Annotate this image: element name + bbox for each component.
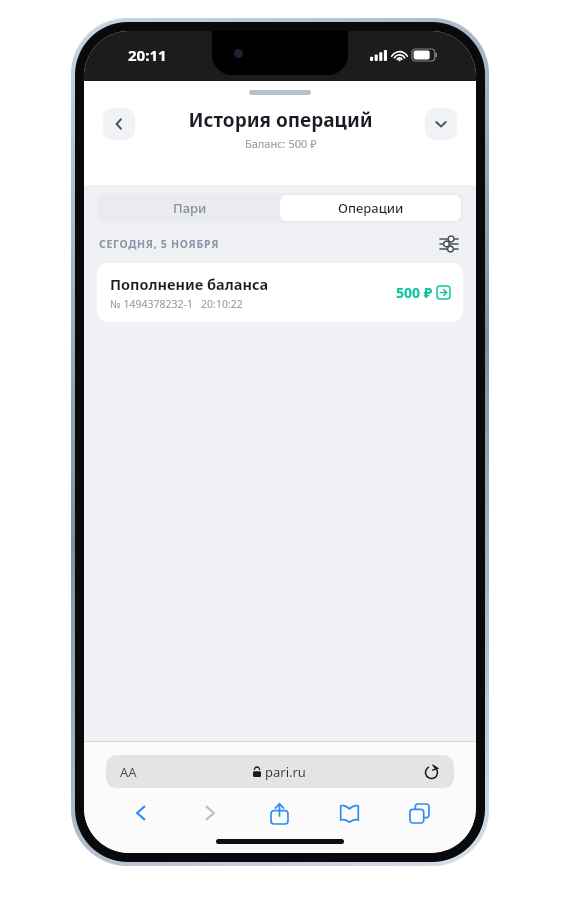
button[interactable]: АА [106, 755, 454, 788]
button[interactable]: Tabs [384, 800, 454, 826]
staticText: АА [120, 763, 137, 781]
staticText: Пополнение баланса [110, 274, 269, 294]
button[interactable]: Filter [437, 232, 461, 256]
button[interactable]: Collapse [425, 108, 457, 140]
button[interactable]: Пари [99, 195, 280, 221]
staticText: СЕГОДНЯ, 5 НОЯБРЯ [99, 237, 220, 251]
button[interactable]: Операции [280, 195, 461, 221]
staticText: 20:11 [128, 45, 167, 65]
button[interactable]: Back [106, 800, 175, 826]
button[interactable]: Bookmarks [314, 800, 384, 826]
staticText: Баланс: 500 ₽ [245, 136, 317, 151]
staticText: № 1494378232-1 20:10:22 [110, 297, 243, 311]
staticText: 500 ₽ [396, 283, 433, 302]
button[interactable]: Forward [175, 800, 244, 826]
staticText: Пари [173, 199, 207, 217]
staticText: Операции [338, 199, 404, 217]
button[interactable]: Reload [422, 763, 440, 781]
staticText: pari.ru [265, 763, 306, 781]
button[interactable]: Share [244, 800, 314, 826]
button[interactable]: Back [103, 108, 135, 140]
button[interactable]: Пополнение баланса [97, 263, 463, 322]
staticText: История операций [188, 107, 373, 133]
